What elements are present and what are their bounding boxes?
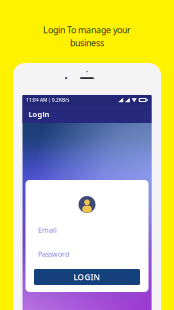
staticText: Login (28, 109, 49, 119)
staticText: Email (38, 225, 57, 235)
staticText: Login To manage your (43, 24, 131, 36)
staticText: 11:04 AM | 0.2KB/s (26, 97, 69, 103)
button[interactable]: Email (38, 225, 136, 235)
staticText: LOGIN (73, 271, 100, 282)
button[interactable]: LOGIN (34, 269, 140, 285)
staticText: Password (38, 249, 69, 259)
staticText: business (70, 37, 104, 49)
button[interactable]: Password (38, 249, 136, 259)
